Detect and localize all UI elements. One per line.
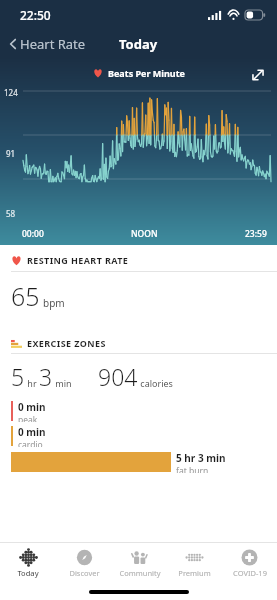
- staticText: 124: [4, 87, 18, 98]
- staticText: 0 min: [18, 400, 46, 414]
- button[interactable]: RESTING HEART RATE: [0, 245, 277, 323]
- staticText: 3: [39, 361, 53, 392]
- staticText: EXERCISE ZONES: [27, 337, 106, 349]
- staticText: COVID-19: [233, 568, 267, 578]
- staticText: 0 min: [18, 425, 46, 439]
- staticText: 91: [6, 148, 16, 159]
- staticText: Today: [119, 35, 158, 53]
- staticText: NOON: [131, 228, 158, 240]
- button[interactable]: COVID-19: [222, 543, 277, 583]
- staticText: 65: [11, 279, 40, 313]
- staticText: min: [53, 377, 72, 389]
- staticText: Today: [17, 568, 39, 578]
- staticText: 5: [11, 361, 25, 392]
- staticText: Beats Per Minute: [108, 67, 185, 79]
- staticText: hr: [25, 377, 39, 389]
- button[interactable]: Expand chart: [247, 64, 269, 86]
- staticText: Premium: [178, 568, 211, 578]
- staticText: 58: [6, 208, 16, 219]
- staticText: calories: [138, 377, 173, 389]
- button[interactable]: Community: [112, 543, 167, 583]
- button[interactable]: Premium: [167, 543, 222, 583]
- staticText: 904: [98, 361, 138, 392]
- staticText: Community: [119, 568, 161, 578]
- staticText: Discover: [69, 568, 100, 578]
- staticText: 00:00: [22, 228, 44, 240]
- staticText: 5 hr 3 min: [176, 451, 226, 465]
- button[interactable]: Today: [0, 543, 56, 583]
- button[interactable]: Discover: [56, 543, 112, 583]
- staticText: peak: [18, 414, 38, 422]
- staticText: 22:50: [20, 7, 51, 23]
- button[interactable]: Heart Rate: [6, 35, 86, 53]
- staticText: RESTING HEART RATE: [27, 254, 129, 266]
- staticText: fat burn: [176, 465, 209, 473]
- staticText: bpm: [43, 296, 65, 310]
- staticText: 23:59: [245, 228, 267, 240]
- button[interactable]: EXERCISE ZONES: [0, 331, 277, 483]
- staticText: Heart Rate: [20, 35, 86, 53]
- staticText: cardio: [18, 439, 43, 447]
